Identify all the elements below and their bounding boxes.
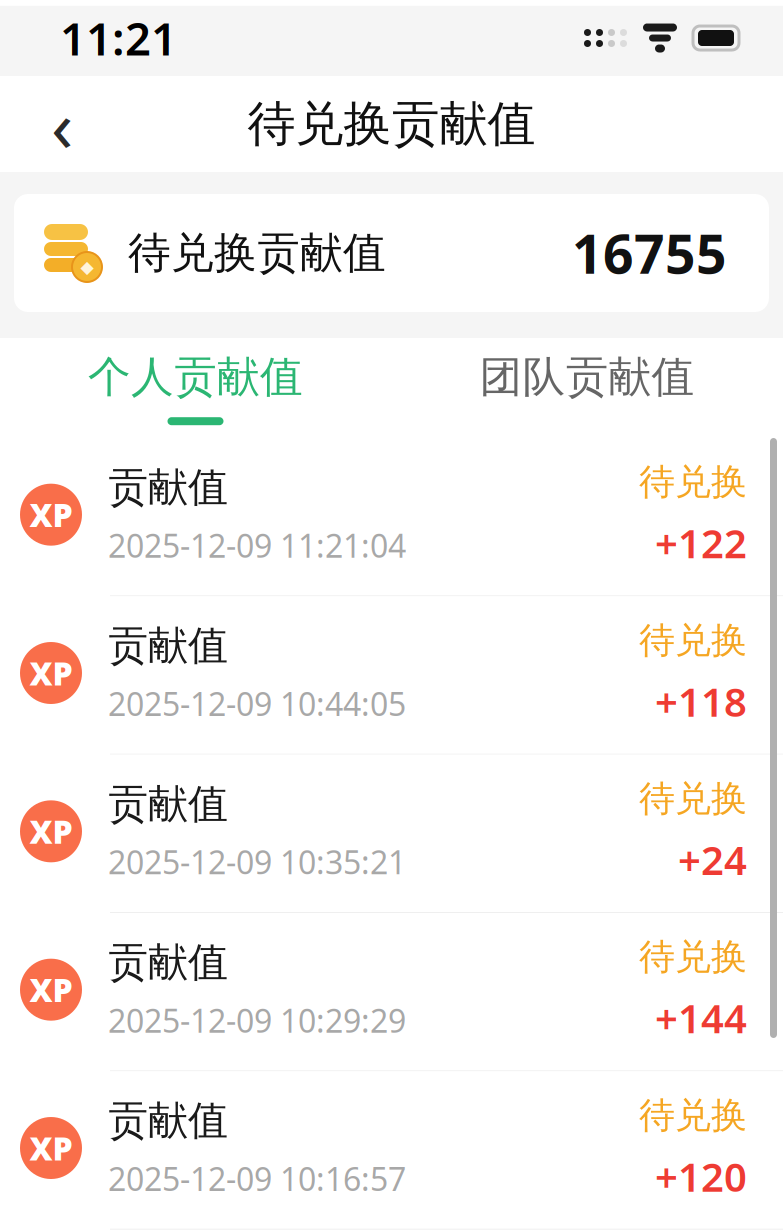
staticText: 贡献值	[108, 463, 228, 512]
staticText: 贡献值	[108, 779, 228, 829]
button[interactable]: XP	[0, 755, 783, 913]
staticText: ‹	[51, 76, 73, 172]
staticText: ◆	[80, 257, 93, 277]
staticText: 2025-12-09 10:16:57	[108, 1157, 406, 1200]
staticText: +120	[655, 1150, 747, 1203]
staticText: 贡献值	[108, 1096, 228, 1145]
staticText: 待兑换	[639, 460, 747, 504]
staticText: XP	[29, 493, 72, 536]
staticText: +118	[655, 675, 747, 728]
staticText: 待兑换	[639, 777, 747, 821]
staticText: 贡献值	[108, 621, 228, 670]
staticText: 待兑换	[639, 618, 747, 662]
staticText: 个人贡献值	[88, 351, 303, 403]
button[interactable]: 团队贡献值	[391, 338, 783, 438]
button[interactable]: XP	[0, 1071, 783, 1230]
staticText: 待兑换	[639, 935, 747, 979]
staticText: 团队贡献值	[479, 351, 694, 403]
staticText: 16755	[572, 218, 727, 288]
staticText: 2025-12-09 11:21:04	[108, 524, 406, 566]
staticText: 2025-12-09 10:29:29	[108, 999, 406, 1041]
staticText: XP	[29, 968, 72, 1011]
staticText: 待兑换贡献值	[247, 94, 535, 153]
staticText: 贡献值	[108, 938, 228, 987]
staticText: 2025-12-09 10:44:05	[108, 682, 406, 725]
staticText: XP	[29, 652, 72, 694]
staticText: +122	[655, 516, 747, 569]
staticText: +144	[655, 991, 747, 1044]
staticText: +24	[678, 833, 747, 886]
button[interactable]: XP	[0, 438, 783, 596]
button[interactable]: 返回	[22, 84, 102, 164]
staticText: 11:21	[60, 8, 177, 68]
staticText: 待兑换	[639, 1093, 747, 1137]
button[interactable]: 个人贡献值	[0, 338, 391, 438]
button[interactable]: XP	[0, 596, 783, 755]
staticText: 2025-12-09 10:35:21	[108, 841, 406, 883]
staticText: XP	[29, 1127, 72, 1169]
staticText: 待兑换贡献值	[128, 227, 386, 279]
staticText: XP	[29, 810, 72, 853]
button[interactable]: XP	[0, 913, 783, 1071]
